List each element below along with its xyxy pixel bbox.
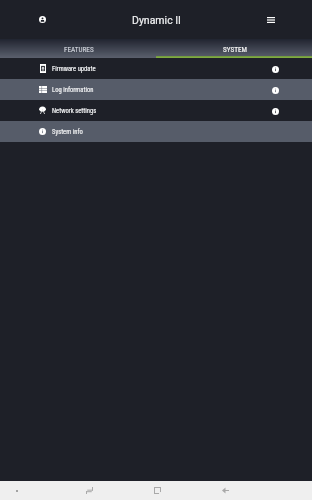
staticText: Network settings xyxy=(52,107,97,115)
staticText: FEATURES xyxy=(64,45,94,53)
button[interactable]: FEATURES xyxy=(0,39,156,58)
staticText: System info xyxy=(52,128,83,136)
button[interactable]: Home xyxy=(144,481,170,500)
staticText: Log information xyxy=(52,86,94,94)
button[interactable]: Account xyxy=(30,7,55,32)
button[interactable]: Back xyxy=(212,481,238,500)
button[interactable]: Log information xyxy=(0,79,312,100)
button[interactable]: Info xyxy=(268,62,282,76)
button[interactable]: SYSTEM xyxy=(156,39,312,58)
button[interactable]: System info xyxy=(0,121,312,142)
button[interactable]: Info xyxy=(268,83,282,97)
staticText: SYSTEM xyxy=(223,45,247,53)
button[interactable]: Menu xyxy=(258,7,283,32)
button[interactable]: Info xyxy=(268,104,282,118)
button[interactable]: More xyxy=(4,481,30,500)
staticText: Firmware update xyxy=(52,65,96,73)
button[interactable]: Recent apps xyxy=(76,481,102,500)
button[interactable]: Network settings xyxy=(0,100,312,121)
staticText: Dynamic II xyxy=(132,14,181,26)
button[interactable]: Firmware update xyxy=(0,58,312,79)
